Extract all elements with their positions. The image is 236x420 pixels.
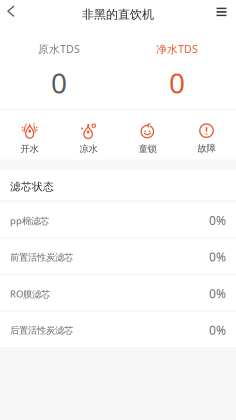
staticText: 开水 (20, 143, 38, 155)
staticText: 0% (209, 285, 226, 301)
staticText: 滤芯状态 (10, 180, 54, 193)
staticText: pp棉滤芯 (10, 214, 49, 227)
staticText: 净水TDS (156, 42, 198, 56)
staticText: 0% (209, 249, 226, 265)
staticText: RO膜滤芯 (10, 288, 50, 300)
staticText: 0 (51, 64, 67, 101)
button[interactable]: 后置活性炭滤芯 (0, 311, 236, 347)
button[interactable]: 故障 (177, 110, 236, 160)
button[interactable]: Back (0, 3, 20, 26)
staticText: 前置活性炭滤芯 (10, 252, 73, 263)
staticText: 原水TDS (38, 42, 80, 56)
staticText: 童锁 (138, 143, 156, 155)
staticText: 0% (209, 212, 226, 228)
staticText: 非黑的直饮机 (82, 7, 154, 22)
button[interactable]: 童锁 (118, 110, 177, 160)
button[interactable]: pp棉滤芯 (0, 202, 236, 237)
button[interactable]: 凉水 (59, 110, 118, 160)
staticText: 0% (209, 322, 226, 338)
staticText: 凉水 (79, 143, 97, 155)
staticText: 后置活性炭滤芯 (10, 325, 73, 336)
staticText: 故障 (197, 143, 215, 154)
staticText: 0 (169, 64, 185, 101)
button[interactable]: 开水 (0, 110, 59, 160)
button[interactable]: RO膜滤芯 (0, 275, 236, 311)
button[interactable]: 前置活性炭滤芯 (0, 238, 236, 274)
button[interactable]: Menu (210, 2, 230, 26)
